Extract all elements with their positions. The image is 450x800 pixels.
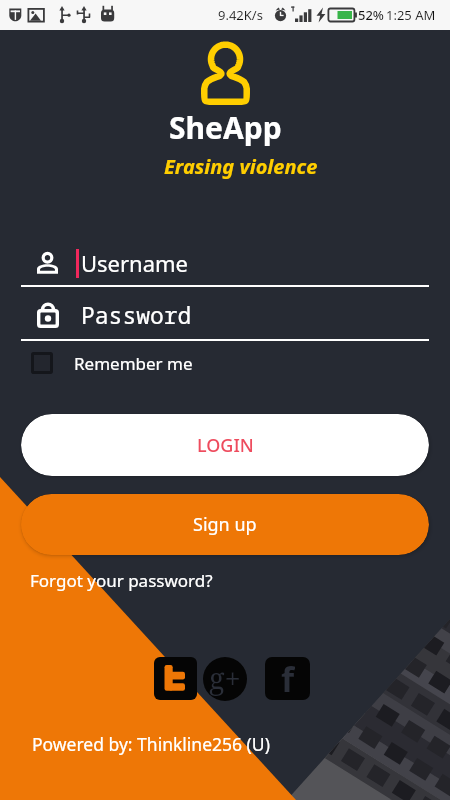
staticText: Username — [81, 248, 189, 278]
staticText: Erasing violence — [164, 153, 318, 180]
staticText: f — [281, 657, 295, 699]
staticText: Forgot your password? — [30, 569, 213, 592]
staticText: Powered by: Thinkline256 (U) — [32, 732, 270, 756]
staticText: 52% — [358, 6, 384, 24]
button[interactable]: Password — [21, 289, 429, 339]
button[interactable]: Facebook — [265, 657, 310, 700]
staticText: Sign up — [193, 512, 257, 537]
button[interactable]: Sign up — [21, 494, 429, 555]
staticText: Remember me — [74, 352, 193, 375]
button[interactable]: Username — [21, 240, 429, 286]
button[interactable]: LOGIN — [21, 414, 429, 476]
staticText: 9.42K/s — [218, 6, 263, 24]
staticText: 1:25 AM — [386, 6, 436, 24]
staticText: g+ — [209, 658, 241, 697]
button[interactable]: Forgot your password? — [21, 564, 222, 597]
button[interactable]: Google Plus — [203, 657, 247, 701]
button[interactable]: Remember me — [21, 345, 193, 381]
button[interactable]: Powered by: Thinkline256 (U) — [32, 732, 270, 756]
staticText: LOGIN — [197, 433, 254, 458]
staticText: SheApp — [169, 107, 282, 148]
staticText: Password — [81, 299, 192, 330]
button[interactable]: Twitter — [154, 657, 197, 700]
